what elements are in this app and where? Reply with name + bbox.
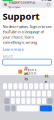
button[interactable]: Key (24, 83, 28, 89)
button[interactable]: Key (32, 91, 36, 97)
button[interactable]: Key (16, 98, 20, 104)
button[interactable]: Key (8, 83, 12, 89)
button[interactable]: Key (19, 83, 23, 89)
button[interactable]: Key (11, 98, 15, 104)
staticText: He (45, 73, 49, 84)
staticText: Support (2, 10, 39, 22)
button[interactable]: Key (17, 105, 39, 111)
button[interactable]: Key (37, 98, 41, 104)
button[interactable]: Key (4, 98, 10, 104)
button[interactable]: Key (5, 105, 10, 111)
button[interactable]: Key (29, 83, 33, 89)
button[interactable]: Key (6, 91, 10, 97)
staticText: Learn more (2, 46, 23, 52)
button[interactable]: Key (40, 105, 52, 111)
staticText: Subject (2, 55, 12, 58)
staticText: Report a problem (24, 68, 36, 75)
button[interactable]: Key (13, 83, 17, 89)
button[interactable]: Key (50, 83, 54, 89)
button[interactable]: Key (47, 91, 51, 97)
staticText: support.example.com (8, 0, 35, 10)
button[interactable]: Key (3, 83, 7, 89)
button[interactable]: Key (21, 91, 25, 97)
button[interactable]: Key (42, 98, 46, 104)
button[interactable]: Key (11, 105, 16, 111)
button[interactable]: Key (21, 98, 25, 104)
button[interactable]: Key (45, 83, 49, 89)
button[interactable]: Key (11, 91, 15, 97)
button[interactable]: Key (16, 91, 20, 97)
button[interactable]: Key (42, 91, 46, 97)
button[interactable]: Key (32, 98, 36, 104)
button[interactable]: Key (37, 91, 41, 97)
staticText: No description. Sign in to see YouTube i… (2, 24, 51, 45)
button[interactable]: Key (34, 83, 38, 89)
button[interactable]: Key (26, 98, 30, 104)
staticText: Hello (24, 65, 28, 92)
button[interactable]: Key (47, 98, 53, 104)
button[interactable]: Key (26, 91, 30, 97)
button[interactable]: Key (39, 83, 43, 89)
